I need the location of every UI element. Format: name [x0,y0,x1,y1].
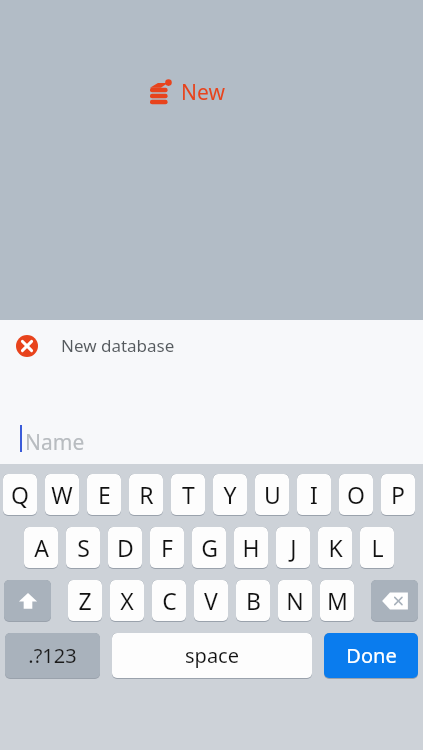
staticText: New database [61,334,175,357]
button[interactable]: L [360,527,394,569]
button[interactable]: A [24,527,58,569]
button[interactable]: C [152,580,186,622]
button[interactable]: Shift [4,580,51,622]
staticText: New [181,78,225,107]
button[interactable]: D [108,527,142,569]
button[interactable]: Q [3,474,37,516]
staticText: .?123 [28,642,77,669]
staticText: Name [25,428,85,457]
staticText: A [34,532,49,563]
button[interactable]: B [236,580,270,622]
staticText: K [328,532,343,563]
button[interactable]: W [45,474,79,516]
staticText: V [204,585,218,616]
button[interactable]: F [150,527,184,569]
button[interactable]: X [110,580,144,622]
staticText: P [391,479,405,510]
button[interactable]: M [320,580,354,622]
staticText: B [246,585,261,616]
staticText: S [77,532,90,563]
staticText: N [286,585,304,616]
button[interactable]: S [66,527,100,569]
button[interactable]: N [278,580,312,622]
button[interactable]: K [318,527,352,569]
staticText: R [139,479,154,510]
button[interactable]: G [192,527,226,569]
button[interactable]: Done [324,633,418,679]
staticText: H [242,532,260,563]
staticText: X [120,585,134,616]
staticText: F [161,532,173,563]
staticText: G [201,532,218,563]
button[interactable]: J [276,527,310,569]
button[interactable]: T [171,474,205,516]
button[interactable]: E [87,474,121,516]
button[interactable]: Backspace [371,580,418,622]
staticText: Y [223,479,237,510]
button[interactable]: H [234,527,268,569]
button[interactable]: Close [14,333,40,359]
staticText: space [185,642,239,669]
button[interactable]: U [255,474,289,516]
button[interactable]: V [194,580,228,622]
button[interactable]: Y [213,474,247,516]
staticText: U [264,479,281,510]
staticText: M [327,585,348,616]
staticText: J [290,532,297,563]
button[interactable]: O [339,474,373,516]
button[interactable]: I [297,474,331,516]
button[interactable]: Z [68,580,102,622]
staticText: C [162,585,177,616]
staticText: O [347,479,365,510]
button[interactable]: R [129,474,163,516]
staticText: Q [11,479,29,510]
staticText: Done [346,642,397,669]
button[interactable]: New [150,78,225,107]
staticText: E [98,479,111,510]
staticText: I [310,479,318,510]
button[interactable]: .?123 [5,633,100,679]
button[interactable]: Name [0,372,423,464]
staticText: L [371,532,384,563]
staticText: D [117,532,134,563]
staticText: T [182,479,195,510]
staticText: W [51,479,73,510]
button[interactable]: space [112,633,312,679]
button[interactable]: P [381,474,415,516]
staticText: Z [78,585,92,616]
